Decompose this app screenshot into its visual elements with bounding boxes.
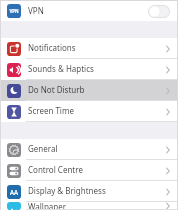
button[interactable]: Screen Time bbox=[0, 101, 178, 122]
button[interactable]: Sounds & Haptics bbox=[0, 59, 178, 80]
staticText: Display & Brightness bbox=[28, 185, 106, 196]
button[interactable]: Notifications bbox=[0, 38, 178, 59]
staticText: Control Centre bbox=[28, 164, 83, 175]
staticText: Do Not Disturb bbox=[28, 84, 85, 95]
button[interactable]: Wallpaper bbox=[0, 202, 178, 210]
staticText: VPN bbox=[9, 8, 19, 14]
staticText: General bbox=[28, 143, 58, 154]
button[interactable]: Do Not Disturb bbox=[0, 80, 178, 101]
staticText: Screen Time bbox=[28, 105, 74, 116]
staticText: Sounds & Haptics bbox=[28, 63, 94, 74]
button[interactable]: Control Centre bbox=[0, 160, 178, 181]
staticText: AA bbox=[10, 188, 19, 196]
button[interactable]: VPN toggle bbox=[148, 5, 170, 18]
staticText: VPN bbox=[28, 5, 44, 16]
button[interactable]: General bbox=[0, 139, 178, 160]
button[interactable]: AA bbox=[0, 181, 178, 202]
button[interactable]: VPN bbox=[0, 1, 178, 21]
staticText: Wallpaper bbox=[28, 201, 67, 209]
staticText: Notifications bbox=[28, 42, 76, 53]
